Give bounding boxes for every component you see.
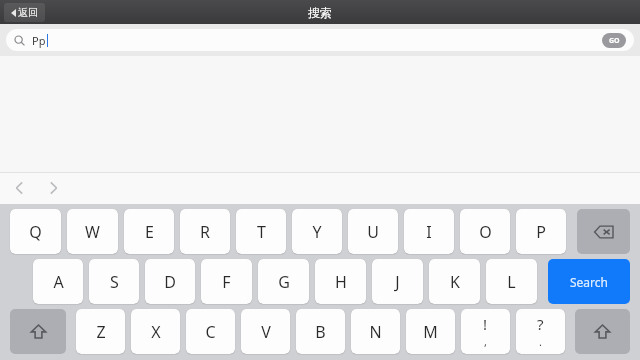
staticText: S bbox=[110, 271, 119, 293]
staticText: A bbox=[53, 271, 64, 293]
staticText: M bbox=[423, 321, 438, 343]
button[interactable]: P bbox=[516, 209, 566, 254]
staticText: F bbox=[222, 271, 231, 293]
button[interactable]: F bbox=[201, 259, 252, 304]
staticText: B bbox=[315, 321, 326, 343]
staticText: J bbox=[395, 271, 400, 293]
button[interactable]: U bbox=[348, 209, 398, 254]
button[interactable]: Pp bbox=[6, 29, 634, 51]
button[interactable]: M bbox=[406, 309, 455, 354]
button[interactable]: Previous bbox=[8, 177, 30, 199]
button[interactable]: R bbox=[180, 209, 230, 254]
button[interactable]: ! bbox=[461, 309, 510, 354]
staticText: H bbox=[335, 271, 347, 293]
button[interactable]: Y bbox=[292, 209, 342, 254]
staticText: I bbox=[426, 221, 432, 243]
staticText: Q bbox=[29, 221, 42, 243]
button[interactable]: Q bbox=[10, 209, 61, 254]
button[interactable]: H bbox=[315, 259, 366, 304]
button[interactable]: L bbox=[486, 259, 537, 304]
staticText: N bbox=[369, 321, 382, 343]
button[interactable]: Backspace bbox=[577, 209, 630, 254]
staticText: 搜索 bbox=[308, 5, 332, 20]
staticText: C bbox=[205, 321, 216, 343]
button[interactable]: B bbox=[296, 309, 345, 354]
button[interactable]: O bbox=[460, 209, 510, 254]
button[interactable]: ? bbox=[516, 309, 565, 354]
button[interactable]: I bbox=[404, 209, 454, 254]
button[interactable]: A bbox=[33, 259, 83, 304]
staticText: W bbox=[85, 221, 100, 243]
button[interactable]: C bbox=[186, 309, 235, 354]
staticText: 返回 bbox=[18, 6, 38, 19]
staticText: O bbox=[479, 221, 492, 243]
button[interactable]: N bbox=[351, 309, 400, 354]
staticText: U bbox=[367, 221, 379, 243]
staticText: Z bbox=[96, 321, 106, 343]
button[interactable]: J bbox=[372, 259, 423, 304]
button[interactable]: S bbox=[89, 259, 139, 304]
button[interactable]: Shift bbox=[575, 309, 630, 354]
staticText: T bbox=[257, 221, 266, 243]
staticText: ! bbox=[483, 314, 488, 334]
button[interactable]: G bbox=[258, 259, 309, 304]
staticText: R bbox=[200, 221, 210, 243]
staticText: GO bbox=[609, 36, 620, 46]
button[interactable]: 返回 bbox=[4, 3, 45, 22]
staticText: E bbox=[145, 221, 154, 243]
staticText: L bbox=[507, 271, 516, 293]
staticText: G bbox=[278, 271, 290, 293]
staticText: Search bbox=[570, 274, 608, 290]
button[interactable]: Next bbox=[42, 177, 64, 199]
button[interactable]: T bbox=[236, 209, 286, 254]
staticText: P bbox=[536, 221, 546, 243]
staticText: Y bbox=[312, 221, 322, 243]
button[interactable]: W bbox=[67, 209, 118, 254]
button[interactable]: Search bbox=[548, 259, 630, 304]
staticText: X bbox=[151, 321, 161, 343]
button[interactable]: E bbox=[124, 209, 174, 254]
button[interactable]: X bbox=[131, 309, 180, 354]
staticText: Pp bbox=[32, 33, 46, 48]
button[interactable]: K bbox=[429, 259, 480, 304]
staticText: ? bbox=[537, 314, 544, 334]
button[interactable]: GO bbox=[602, 33, 626, 48]
staticText: D bbox=[164, 271, 176, 293]
staticText: V bbox=[261, 321, 271, 343]
button[interactable]: V bbox=[241, 309, 290, 354]
staticText: . bbox=[539, 334, 542, 349]
button[interactable]: D bbox=[145, 259, 195, 304]
staticText: K bbox=[450, 271, 460, 293]
button[interactable]: Z bbox=[76, 309, 125, 354]
staticText: , bbox=[484, 334, 487, 349]
button[interactable]: Shift bbox=[10, 309, 66, 354]
